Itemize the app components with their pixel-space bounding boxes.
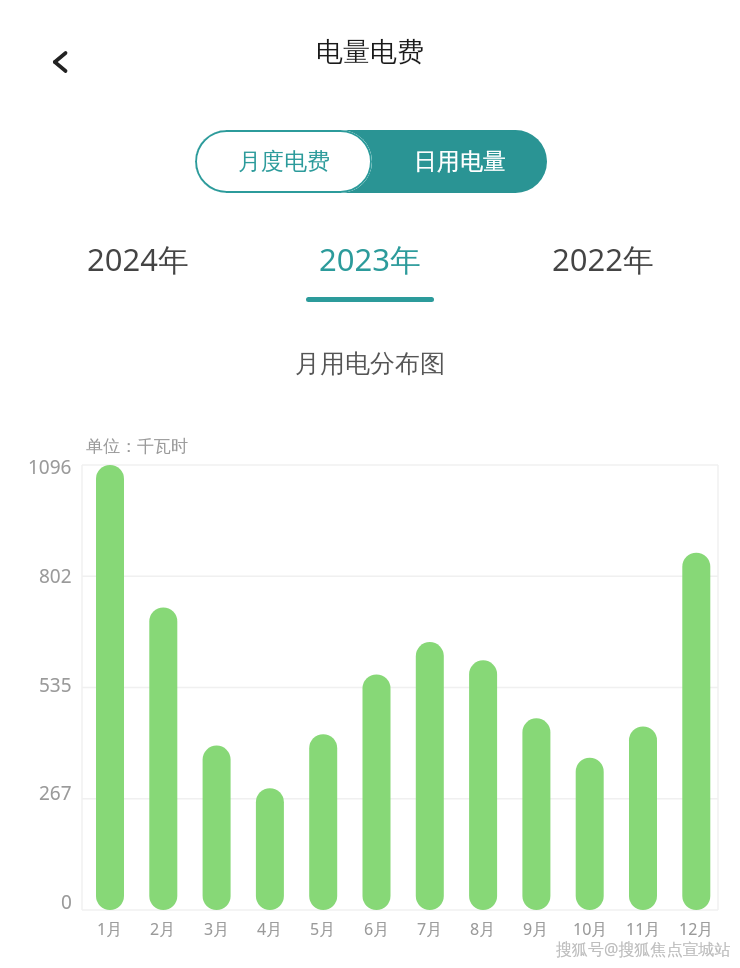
staticText: 12月 <box>679 918 714 940</box>
staticText: 单位：千瓦时 <box>86 436 188 457</box>
staticText: 8月 <box>470 918 496 940</box>
staticText: 2022年 <box>552 238 654 280</box>
staticText: 9月 <box>523 918 549 940</box>
staticText: 日用电量 <box>414 147 506 176</box>
staticText: 1096 <box>28 454 72 480</box>
staticText: 月用电分布图 <box>0 348 740 379</box>
button[interactable]: 日用电量 <box>372 130 547 193</box>
staticText: 月度电费 <box>238 147 330 176</box>
staticText: 6月 <box>364 918 390 940</box>
staticText: 1月 <box>97 918 123 940</box>
staticText: 0 <box>61 889 72 915</box>
staticText: 7月 <box>417 918 443 940</box>
staticText: 电量电费 <box>316 35 424 69</box>
staticText: 2月 <box>150 918 176 940</box>
button[interactable]: 月度电费 <box>195 130 372 193</box>
staticText: 802 <box>39 563 72 589</box>
staticText: 535 <box>39 672 72 698</box>
button[interactable]: 2023年 <box>275 238 465 302</box>
button[interactable]: 2024年 <box>43 238 233 297</box>
staticText: 搜狐号@搜狐焦点宣城站 <box>556 938 731 960</box>
staticText: 2023年 <box>319 238 421 280</box>
staticText: 5月 <box>310 918 336 940</box>
staticText: 3月 <box>204 918 230 940</box>
staticText: 11月 <box>626 918 661 940</box>
staticText: 267 <box>39 780 72 806</box>
staticText: 4月 <box>257 918 283 940</box>
staticText: 2024年 <box>87 238 189 280</box>
button[interactable]: Back <box>38 38 86 86</box>
staticText: 10月 <box>573 918 608 940</box>
button[interactable]: 2022年 <box>508 238 698 297</box>
